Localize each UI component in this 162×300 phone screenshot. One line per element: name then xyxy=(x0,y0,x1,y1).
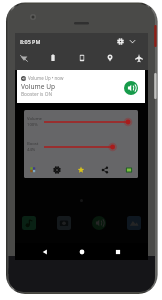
button[interactable]: Volume booster xyxy=(124,81,138,95)
button[interactable]: Settings xyxy=(115,36,126,47)
staticText: Volume xyxy=(27,116,42,122)
staticText: Boost xyxy=(27,141,39,147)
button[interactable]: Rate us xyxy=(73,162,89,178)
button[interactable]: App xyxy=(22,216,36,230)
button[interactable]: Settings xyxy=(49,162,65,178)
button[interactable]: More apps xyxy=(121,162,137,178)
button[interactable]: Apps xyxy=(25,162,41,178)
button[interactable]: Back xyxy=(38,245,52,259)
staticText: 8:05 PM xyxy=(20,38,41,45)
button[interactable]: Auto rotate xyxy=(75,51,89,65)
button[interactable]: Home xyxy=(75,245,89,259)
button[interactable]: Volume slider xyxy=(44,115,138,129)
button[interactable]: App xyxy=(127,216,141,230)
button[interactable]: Share xyxy=(97,162,113,178)
staticText: Volume Up xyxy=(21,82,56,91)
button[interactable]: Recent apps xyxy=(111,245,125,259)
staticText: 44% xyxy=(27,147,36,153)
staticText: Booster is ON xyxy=(21,91,53,98)
button[interactable]: Boost slider xyxy=(44,140,138,154)
button[interactable]: Airplane mode xyxy=(132,51,146,65)
button[interactable]: App xyxy=(92,216,106,230)
button[interactable]: App xyxy=(57,216,71,230)
staticText: Volume Up • now xyxy=(28,75,64,81)
button[interactable]: Volume Up • now xyxy=(17,70,145,103)
button[interactable]: Location xyxy=(103,51,117,65)
button[interactable]: Collapse shade xyxy=(127,36,138,47)
staticText: 100% xyxy=(27,122,38,128)
button[interactable]: Wifi off xyxy=(17,51,31,65)
button[interactable]: Battery saver xyxy=(46,51,60,65)
